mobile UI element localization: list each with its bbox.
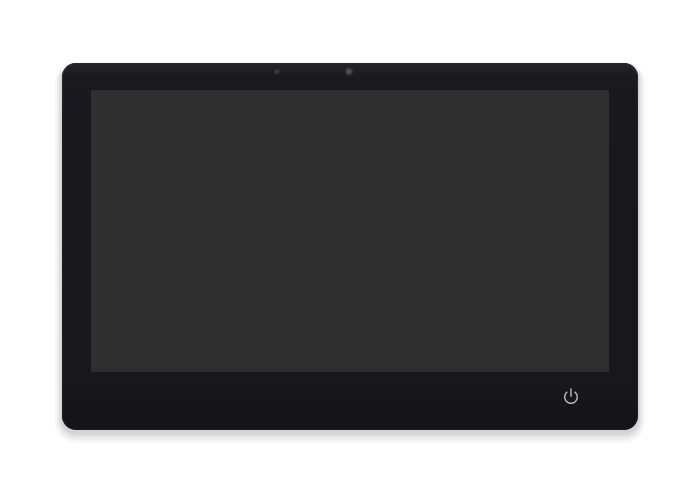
button[interactable]: Power bbox=[557, 383, 585, 411]
button[interactable]: Power bbox=[62, 63, 638, 430]
